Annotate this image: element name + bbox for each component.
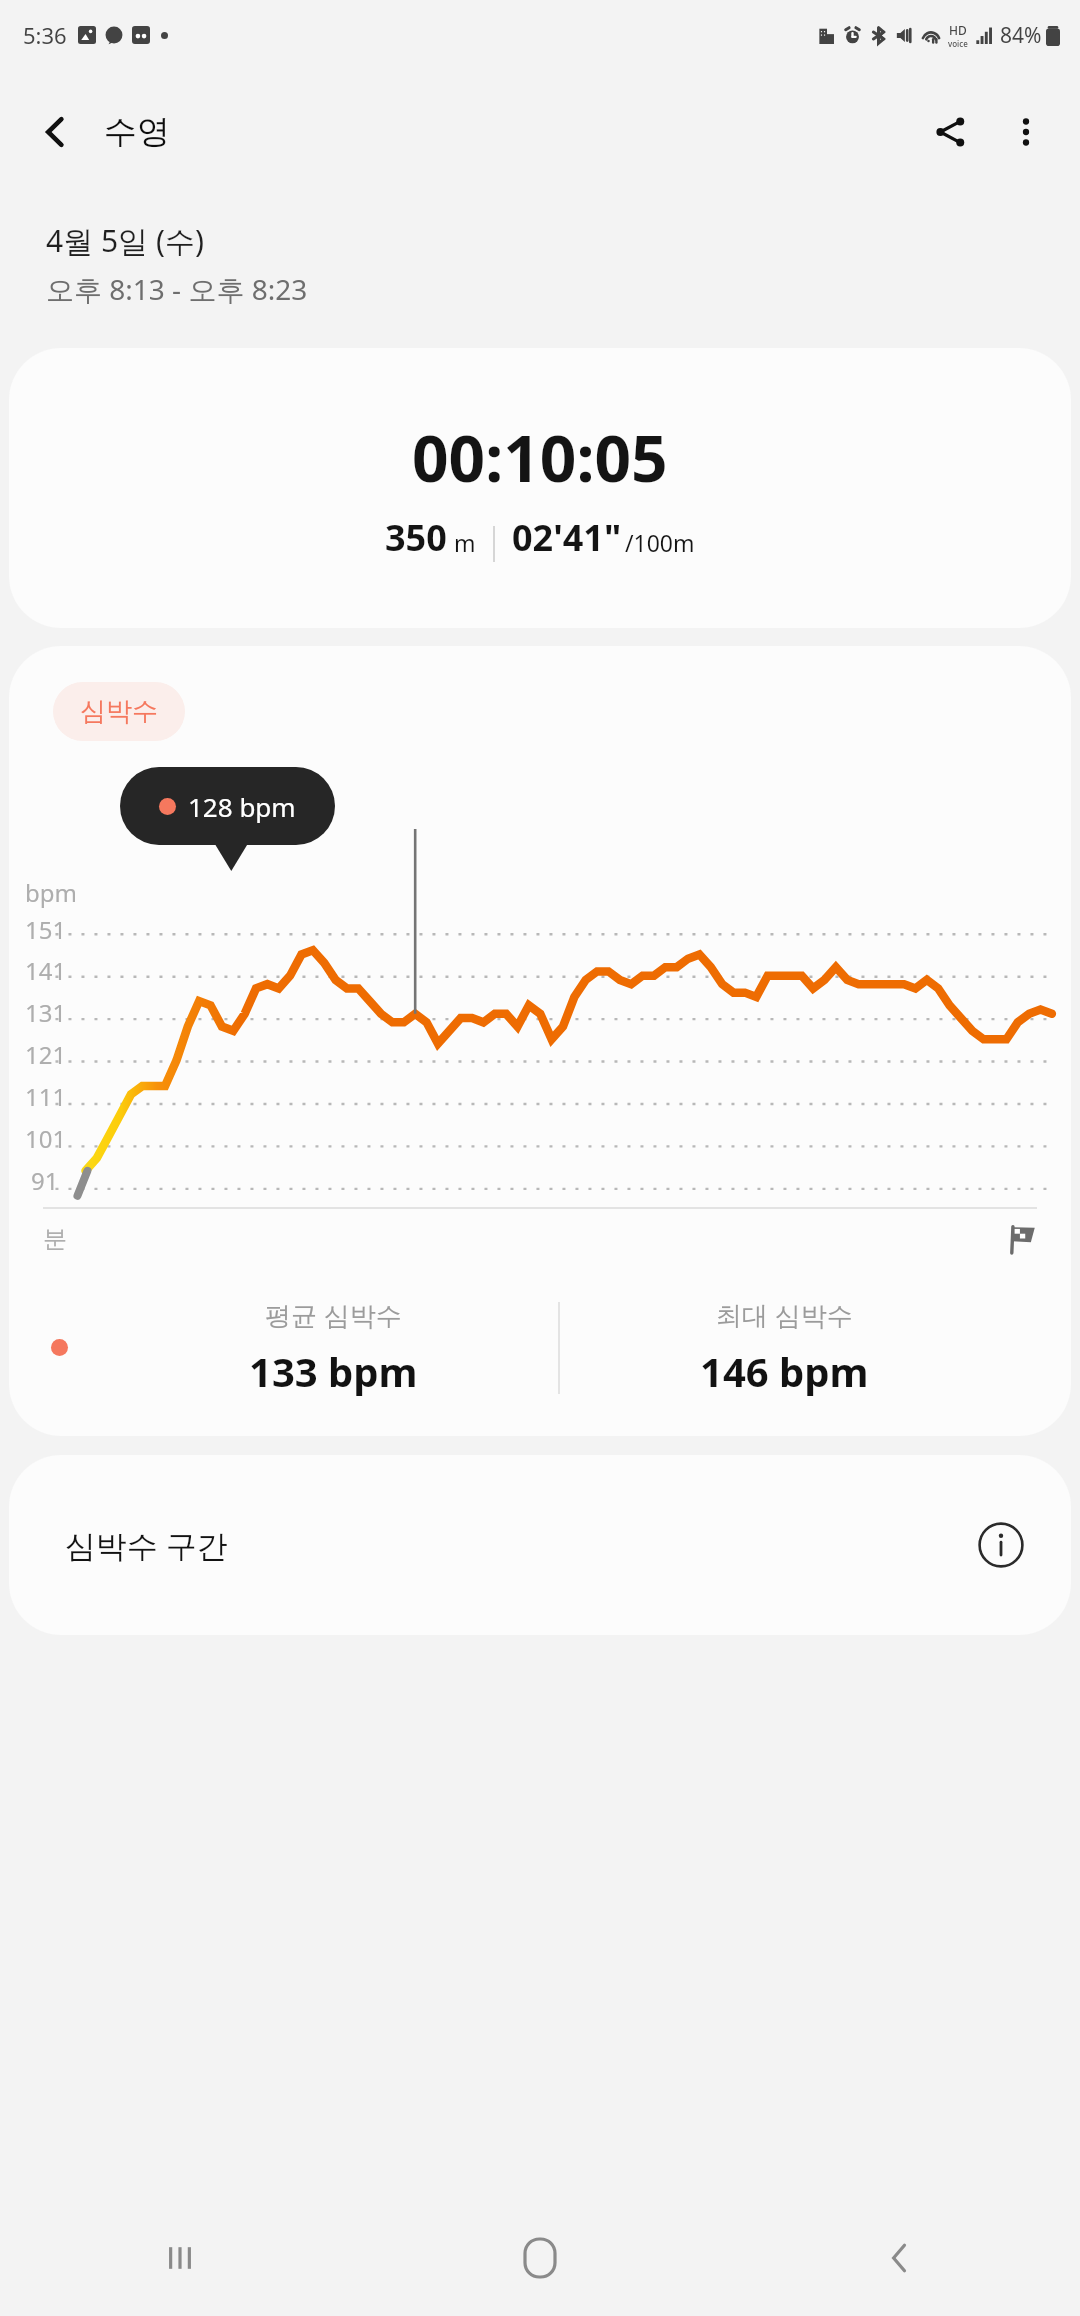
staticText: 4월 5일 (수) (46, 220, 204, 261)
button[interactable]: More options (988, 94, 1064, 170)
staticText: 오후 8:13 - 오후 8:23 (46, 270, 308, 308)
staticText: 최대 심박수 (716, 1297, 853, 1333)
staticText: 141 (25, 954, 67, 987)
staticText: 111 (25, 1080, 67, 1113)
staticText: m (454, 527, 476, 558)
staticText: 128 bpm (188, 789, 296, 824)
staticText: 350 (385, 513, 447, 562)
staticText: 84% (1000, 21, 1042, 50)
staticText: 133 bpm (249, 1344, 418, 1398)
staticText: 91 (31, 1164, 59, 1197)
staticText: 151 (25, 913, 67, 946)
button[interactable]: Share (912, 94, 988, 170)
button[interactable]: Info (969, 1513, 1033, 1577)
staticText: HD (949, 22, 967, 38)
staticText: 심박수 구간 (65, 1524, 229, 1566)
staticText: 평균 심박수 (265, 1297, 402, 1333)
button[interactable]: Recent apps (0, 2200, 360, 2316)
staticText: 131 (25, 996, 67, 1029)
staticText: 5:36 (23, 20, 67, 50)
staticText: 분 (43, 1224, 67, 1254)
staticText: 수영 (104, 111, 170, 153)
staticText: 심박수 (80, 695, 158, 728)
staticText: 146 bpm (700, 1344, 869, 1398)
staticText: voice (948, 38, 968, 49)
staticText: 101 (25, 1122, 67, 1155)
button[interactable]: Back (720, 2200, 1080, 2316)
staticText: 121 (25, 1038, 67, 1071)
button[interactable]: 심박수 (9, 646, 1071, 1436)
staticText: /100m (625, 527, 695, 558)
button[interactable]: Home (360, 2200, 720, 2316)
button[interactable]: 심박수 구간 (9, 1455, 1071, 1635)
staticText: 00:10:05 (412, 414, 668, 501)
button[interactable]: Back (20, 96, 92, 168)
staticText: bpm (25, 876, 77, 909)
button[interactable]: 00:10:05 (9, 348, 1071, 628)
staticText: 02'41" (512, 513, 622, 562)
